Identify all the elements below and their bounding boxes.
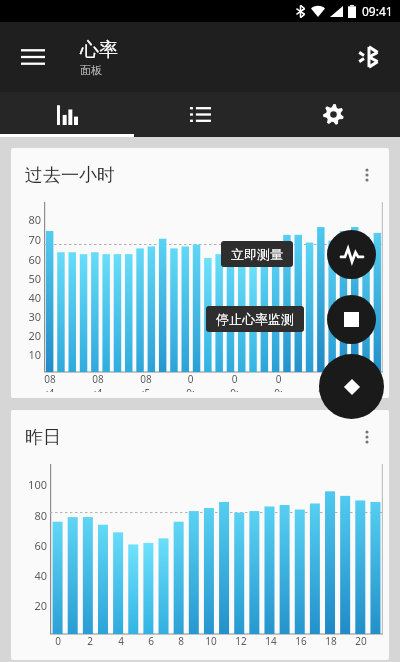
staticText: 09:05 (185, 372, 196, 392)
staticText: 50 (28, 271, 41, 286)
button[interactable]: 过去一小时 (11, 148, 389, 398)
staticText: 10 (28, 347, 41, 362)
staticText: 08:41 (44, 372, 56, 392)
button[interactable]: More options (351, 159, 383, 191)
staticText: 60 (28, 252, 41, 267)
staticText: 16 (295, 634, 307, 648)
button[interactable]: Main action (319, 354, 384, 419)
staticText: 20 (28, 328, 41, 343)
staticText: 心率 (80, 38, 118, 62)
staticText: 20 (355, 634, 367, 648)
staticText: 08:57 (140, 372, 152, 392)
staticText: 6 (148, 634, 154, 648)
staticText: 停止心率监测 (216, 311, 294, 327)
staticText: 09:13 (229, 372, 240, 392)
staticText: 过去一小时 (25, 164, 115, 187)
staticText: 08:49 (92, 372, 104, 392)
staticText: 60 (34, 538, 47, 553)
button[interactable]: 停止心率监测 (206, 306, 304, 332)
staticText: 8 (178, 634, 184, 648)
staticText: 09:41 (362, 3, 393, 19)
staticText: 09:29 (317, 372, 328, 392)
button[interactable]: Statistics chart tab (0, 92, 134, 137)
staticText: 20 (34, 598, 47, 613)
staticText: 立即测量 (231, 246, 283, 262)
staticText: 30 (28, 309, 41, 324)
staticText: 80 (28, 212, 41, 227)
button[interactable]: Open navigation menu (11, 35, 55, 79)
staticText: 100 (28, 477, 47, 492)
staticText: 面板 (80, 63, 102, 77)
button[interactable]: 昨日 (11, 410, 389, 660)
button[interactable]: More options (351, 421, 383, 453)
staticText: 12 (235, 634, 247, 648)
button[interactable]: Bluetooth (346, 35, 390, 79)
staticText: 0 (55, 634, 61, 648)
staticText: 4 (118, 634, 124, 648)
staticText: 昨日 (25, 426, 61, 449)
button[interactable]: Measure now (327, 230, 376, 279)
staticText: 70 (28, 232, 41, 247)
button[interactable]: 立即测量 (221, 241, 293, 267)
button[interactable]: List tab (134, 92, 267, 137)
staticText: 18 (325, 634, 337, 648)
staticText: 2 (87, 634, 93, 648)
staticText: 10 (205, 634, 217, 648)
button[interactable]: Settings tab (267, 92, 400, 137)
staticText: 14 (265, 634, 277, 648)
staticText: 40 (34, 568, 47, 583)
staticText: 09:21 (273, 372, 284, 392)
staticText: 40 (28, 290, 41, 305)
button[interactable]: Stop heart rate monitoring (327, 295, 376, 344)
staticText: 80 (34, 508, 47, 523)
